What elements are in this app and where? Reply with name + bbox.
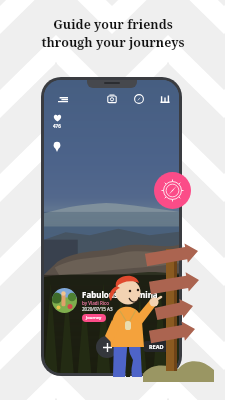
- button[interactable]: READ: [143, 341, 170, 352]
- button[interactable]: Menu: [58, 96, 68, 103]
- staticText: 476: [53, 123, 61, 129]
- staticText: Fabulous Taormina: [82, 289, 158, 300]
- button[interactable]: Add: [96, 336, 118, 358]
- staticText: 2020/07/15 A3: [82, 306, 113, 312]
- button[interactable]: Journey: [82, 314, 106, 322]
- staticText: READ: [149, 343, 164, 350]
- staticText: through your journeys: [41, 34, 185, 51]
- button[interactable]: Location: [53, 141, 61, 152]
- button[interactable]: Stats: [160, 94, 170, 104]
- staticText: Guide your friends: [53, 16, 173, 33]
- button[interactable]: Like: [53, 114, 62, 122]
- button[interactable]: Compass: [134, 94, 144, 104]
- button[interactable]: Explore: [154, 172, 191, 209]
- button[interactable]: Camera: [107, 94, 117, 104]
- staticText: by Vladi Rico: [82, 300, 109, 306]
- staticText: Journey: [86, 315, 102, 321]
- button[interactable]: Author avatar: [52, 288, 77, 313]
